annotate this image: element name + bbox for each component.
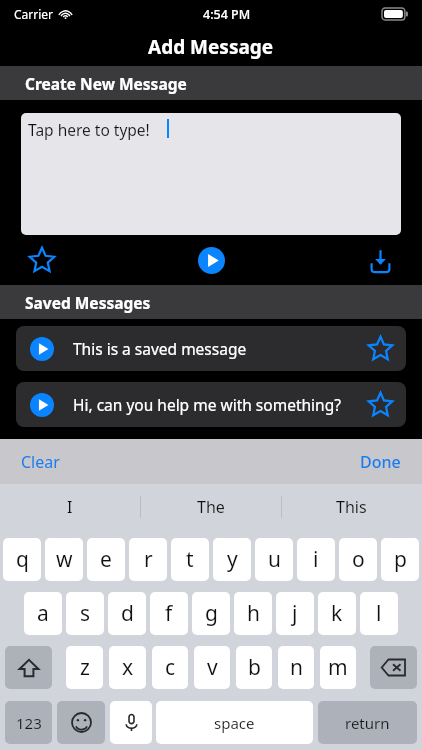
staticText: c [165,653,176,682]
button[interactable]: s [66,592,104,635]
button[interactable]: m [320,646,356,689]
button[interactable]: q [3,538,41,581]
staticText: I [67,496,73,518]
staticText: i [313,545,319,574]
staticText: This is a saved message [73,338,367,359]
button[interactable]: Play [191,240,231,280]
button[interactable]: Dictation [110,701,152,744]
staticText: This [336,496,367,518]
staticText: d [121,599,134,628]
staticText: s [80,599,91,628]
staticText: Tap here to type! [28,119,150,140]
staticText: Saved Messages [25,292,151,313]
staticText: j [292,599,298,628]
staticText: w [56,545,73,574]
staticText: f [165,599,173,628]
staticText: u [268,545,281,574]
staticText: m [328,653,348,682]
staticText: x [122,653,134,682]
staticText: Create New Message [25,73,187,94]
button[interactable]: n [278,646,314,689]
button[interactable]: v [194,646,230,689]
button[interactable]: Done [360,451,401,473]
staticText: Add Message [148,34,274,60]
button[interactable]: c [152,646,188,689]
staticText: 4:54 PM [203,6,251,23]
staticText: Carrier [14,6,54,22]
button[interactable]: I [0,484,140,529]
button[interactable]: return [318,701,417,744]
button[interactable]: o [339,538,377,581]
button[interactable]: u [255,538,293,581]
button[interactable]: Tap here to type! [21,113,401,235]
staticText: Hi, can you help me with something? [73,394,367,415]
button[interactable]: y [213,538,251,581]
button[interactable]: r [129,538,167,581]
staticText: g [205,599,218,628]
staticText: k [331,599,343,628]
button[interactable]: e [87,538,125,581]
button[interactable]: space [156,701,313,744]
button[interactable]: This is a saved message [16,326,406,371]
button[interactable]: t [171,538,209,581]
button[interactable]: a [24,592,62,635]
button[interactable]: d [108,592,146,635]
button[interactable]: h [234,592,272,635]
staticText: return [345,713,390,733]
button[interactable]: b [236,646,272,689]
staticText: a [37,599,49,628]
button[interactable]: Save [360,240,400,280]
staticText: r [144,545,153,574]
button[interactable]: i [297,538,335,581]
button[interactable]: g [192,592,230,635]
staticText: 123 [16,713,42,733]
button[interactable]: p [381,538,419,581]
staticText: n [290,653,303,682]
staticText: h [247,599,260,628]
staticText: v [207,653,218,682]
button[interactable]: x [109,646,146,689]
button[interactable]: z [66,646,103,689]
staticText: p [394,545,407,574]
staticText: o [352,545,365,574]
staticText: t [186,545,194,574]
staticText: b [248,653,261,682]
staticText: Done [360,451,401,473]
staticText: Clear [21,451,60,473]
button[interactable]: Backspace [370,646,417,689]
button[interactable]: Emoji [57,701,105,744]
button[interactable]: f [150,592,188,635]
button[interactable]: 123 [5,701,52,744]
button[interactable]: l [360,592,398,635]
button[interactable]: j [276,592,314,635]
button[interactable]: Favorite [22,240,62,280]
button[interactable]: k [318,592,356,635]
staticText: z [80,653,90,682]
staticText: l [376,599,382,628]
staticText: e [100,545,112,574]
button[interactable]: Hi, can you help me with something? [16,382,406,427]
button[interactable]: Shift [5,646,52,689]
staticText: y [227,545,238,574]
button[interactable]: w [45,538,83,581]
button[interactable]: Clear [21,451,60,473]
staticText: The [197,496,225,518]
button[interactable]: This [281,484,422,529]
button[interactable]: The [140,484,281,529]
staticText: q [16,545,29,574]
staticText: space [214,713,255,733]
